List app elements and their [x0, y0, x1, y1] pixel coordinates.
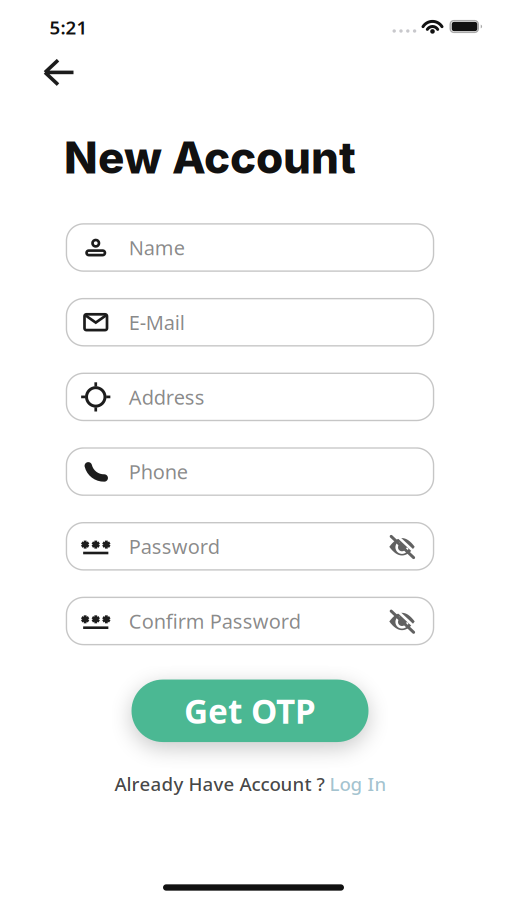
- button[interactable]: Name: [66, 223, 434, 272]
- staticText: 5:21: [49, 15, 87, 40]
- button[interactable]: E-Mail: [66, 298, 434, 346]
- button[interactable]: Get OTP: [131, 679, 368, 742]
- button[interactable]: Phone: [66, 447, 434, 496]
- staticText: Address: [129, 384, 205, 410]
- button[interactable]: Confirm Password: [66, 597, 434, 645]
- button[interactable]: Show password: [386, 605, 418, 637]
- staticText: Password: [129, 533, 220, 560]
- staticText: Get OTP: [184, 689, 316, 733]
- staticText: E-Mail: [129, 309, 185, 335]
- staticText: Phone: [129, 458, 188, 485]
- button[interactable]: Show password: [386, 531, 418, 563]
- button[interactable]: Back: [37, 50, 81, 94]
- button[interactable]: Password: [66, 522, 434, 571]
- button[interactable]: Address: [66, 373, 434, 421]
- staticText: Name: [129, 234, 185, 261]
- staticText: New Account: [64, 131, 356, 184]
- staticText: Log In: [329, 771, 386, 796]
- button[interactable]: Log In: [329, 771, 386, 796]
- staticText: Confirm Password: [129, 608, 301, 634]
- staticText: Already Have Account ?: [114, 771, 329, 796]
